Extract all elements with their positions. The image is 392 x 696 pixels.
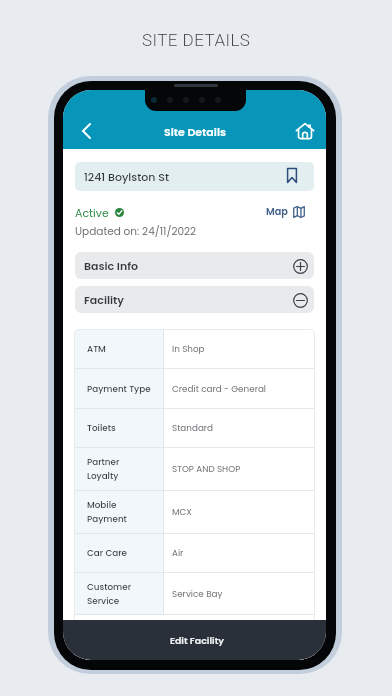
staticText: Toilets bbox=[87, 422, 116, 434]
staticText: MCX bbox=[172, 506, 192, 518]
staticText: Map bbox=[266, 205, 288, 219]
button[interactable]: Map bbox=[266, 205, 305, 219]
staticText: Edit Facility bbox=[170, 634, 225, 647]
staticText: Customer Service bbox=[87, 581, 132, 607]
staticText: Partner Loyalty bbox=[87, 456, 120, 482]
staticText: Service Bay bbox=[172, 588, 223, 600]
staticText: STOP AND SHOP bbox=[172, 463, 241, 475]
button[interactable]: Facility bbox=[75, 286, 314, 313]
staticText: Updated on: 24/11/2022 bbox=[75, 224, 197, 239]
staticText: Air bbox=[172, 547, 184, 559]
button[interactable]: Bookmark bbox=[281, 164, 303, 186]
button[interactable]: Back bbox=[68, 113, 104, 149]
staticText: Facility bbox=[84, 292, 125, 307]
staticText: In Shop bbox=[172, 343, 205, 355]
staticText: Payment Type bbox=[87, 383, 151, 395]
staticText: 1241 Boylston St bbox=[84, 169, 169, 184]
staticText: Standard bbox=[172, 422, 214, 434]
staticText: Active bbox=[75, 205, 109, 219]
button[interactable]: Basic Info bbox=[75, 252, 314, 279]
staticText: Car Care bbox=[87, 547, 127, 559]
staticText: Basic Info bbox=[84, 258, 138, 273]
button[interactable]: Home bbox=[287, 113, 323, 149]
staticText: ATM bbox=[87, 343, 106, 355]
staticText: Site Details bbox=[164, 124, 226, 139]
staticText: Credit card - General bbox=[172, 383, 267, 395]
button[interactable]: 1241 Boylston St bbox=[75, 162, 314, 191]
staticText: SITE DETAILS bbox=[142, 30, 251, 50]
staticText: Mobile Payment bbox=[87, 499, 127, 525]
button[interactable]: Edit Facility bbox=[63, 620, 326, 660]
